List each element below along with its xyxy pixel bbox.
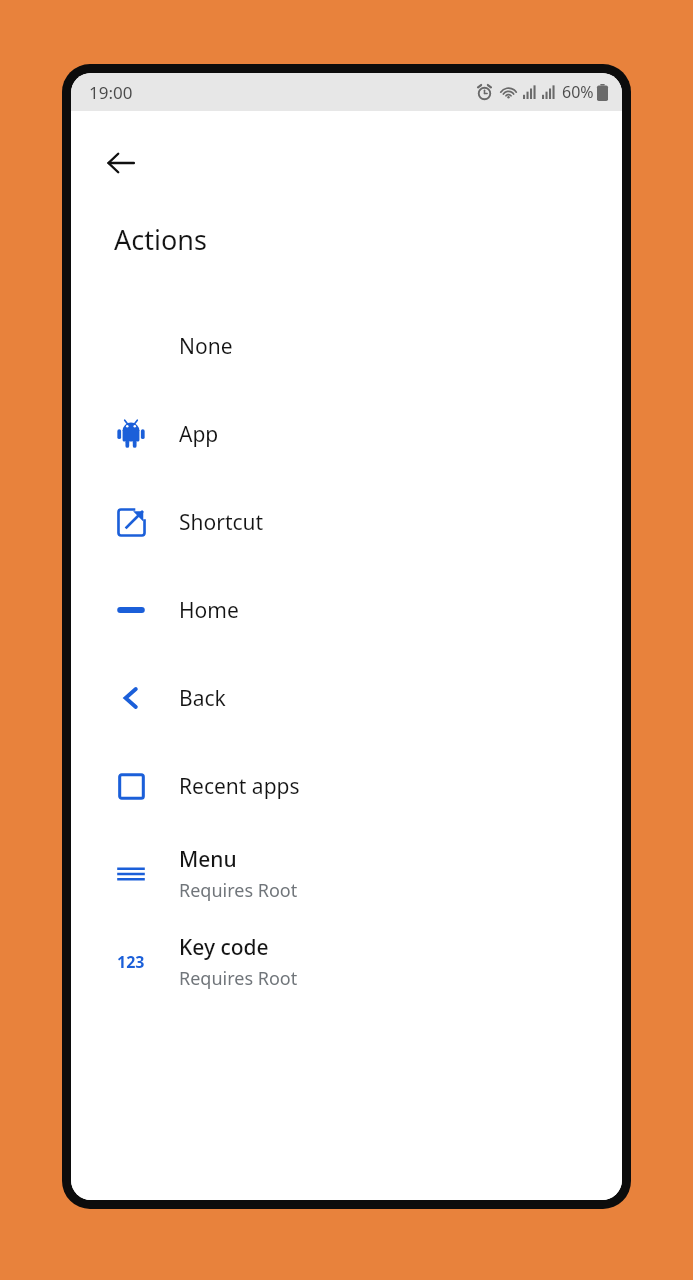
- button[interactable]: Menu: [71, 830, 622, 918]
- staticText: Shortcut: [179, 508, 264, 537]
- staticText: 123: [117, 951, 145, 973]
- staticText: Actions: [114, 221, 207, 258]
- staticText: Requires Root: [179, 966, 298, 991]
- staticText: Back: [179, 684, 226, 713]
- button[interactable]: Recent apps: [71, 742, 622, 830]
- staticText: 60%: [562, 81, 594, 103]
- staticText: Key code: [179, 933, 269, 962]
- button[interactable]: Back: [71, 654, 622, 742]
- staticText: Requires Root: [179, 878, 298, 903]
- staticText: None: [179, 332, 233, 361]
- staticText: Home: [179, 596, 239, 625]
- button[interactable]: 123: [71, 918, 622, 1006]
- button[interactable]: App: [71, 390, 622, 478]
- button[interactable]: Back: [95, 137, 147, 189]
- staticText: Menu: [179, 845, 237, 874]
- button[interactable]: Shortcut: [71, 478, 622, 566]
- button[interactable]: Home: [71, 566, 622, 654]
- button[interactable]: None: [71, 302, 622, 390]
- staticText: App: [179, 420, 219, 449]
- staticText: 19:00: [89, 81, 133, 104]
- staticText: Recent apps: [179, 772, 300, 801]
